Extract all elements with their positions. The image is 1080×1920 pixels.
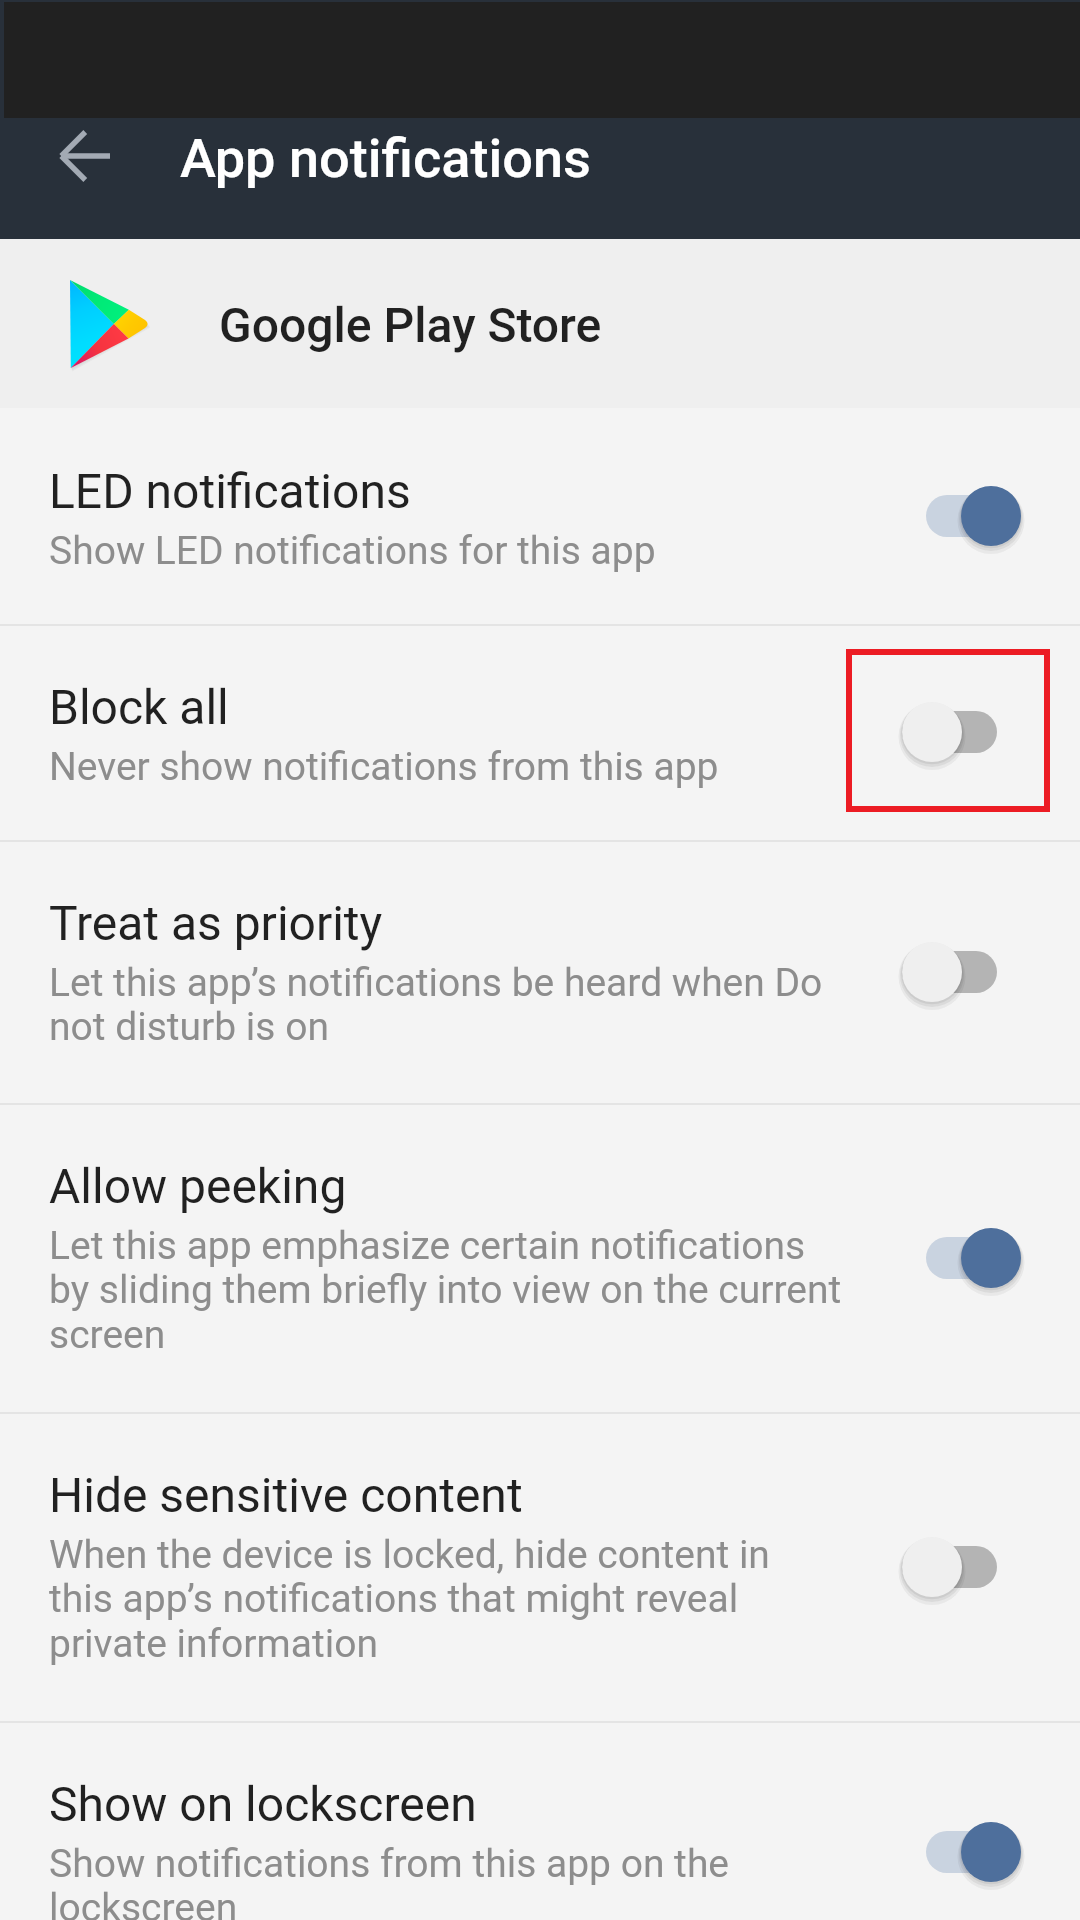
staticText: Allow peeking [49, 1158, 347, 1214]
staticText: Treat as priority [49, 895, 383, 951]
staticText: When the device is locked, hide content … [49, 1532, 770, 1578]
button[interactable]: Block all toggle [880, 687, 1040, 777]
staticText: screen [49, 1312, 166, 1358]
button[interactable]: Show on lockscreen toggle [880, 1807, 1040, 1897]
button[interactable]: Block all [0, 624, 1080, 840]
staticText: not disturb is on [49, 1004, 329, 1050]
button[interactable]: Treat as priority toggle [880, 927, 1040, 1017]
staticText: Show LED notifications for this app [49, 528, 656, 574]
button[interactable]: Allow peeking toggle [880, 1213, 1040, 1303]
button[interactable]: Hide sensitive content toggle [880, 1522, 1040, 1612]
staticText: Let this app’s notifications be heard wh… [49, 960, 823, 1006]
staticText: Show notifications from this app on the [49, 1841, 730, 1887]
staticText: Show on lockscreen [49, 1776, 477, 1832]
staticText: this app’s notifications that might reve… [49, 1576, 739, 1622]
button[interactable]: Show on lockscreen [0, 1721, 1080, 1920]
staticText: Hide sensitive content [49, 1467, 523, 1523]
button[interactable]: Google Play Store [0, 239, 1080, 408]
staticText: by sliding them briefly into view on the… [49, 1267, 842, 1313]
staticText: App notifications [180, 127, 591, 190]
staticText: lockscreen [49, 1885, 238, 1920]
button[interactable]: Navigate up [0, 118, 118, 239]
button[interactable]: LED notifications toggle [880, 471, 1040, 561]
button[interactable]: Hide sensitive content [0, 1412, 1080, 1721]
button[interactable]: Treat as priority [0, 840, 1080, 1103]
button[interactable]: Allow peeking [0, 1103, 1080, 1412]
staticText: LED notifications [49, 463, 411, 519]
staticText: private information [49, 1621, 379, 1667]
staticText: Never show notifications from this app [49, 744, 719, 790]
staticText: Block all [49, 679, 229, 735]
staticText: Let this app emphasize certain notificat… [49, 1223, 806, 1269]
button[interactable]: LED notifications [0, 408, 1080, 624]
staticText: Google Play Store [219, 297, 602, 353]
